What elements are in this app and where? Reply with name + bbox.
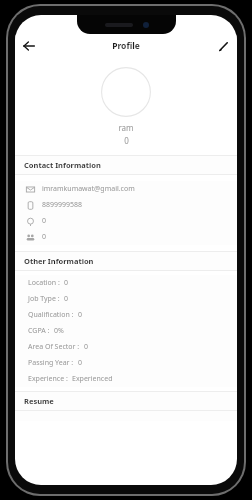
button[interactable]: Experience : (15, 371, 237, 387)
button[interactable]: Profile photo (101, 67, 151, 117)
staticText: 0 (42, 232, 47, 242)
staticText: 0 (78, 310, 83, 320)
staticText: 0 (84, 342, 89, 352)
staticText: ram (118, 122, 134, 133)
staticText: Passing Year : (28, 358, 74, 368)
staticText: 0 (78, 358, 83, 368)
button[interactable]: Resume (15, 392, 237, 410)
button[interactable]: Passing Year : (15, 355, 237, 371)
button[interactable]: Other Information (15, 252, 237, 270)
staticText: 0 (64, 278, 69, 288)
staticText: Area Of Sector : (28, 342, 80, 352)
staticText: imramkumawat@gmail.com (42, 184, 135, 194)
button[interactable]: Area Of Sector : (15, 339, 237, 355)
staticText: Location : (28, 278, 60, 288)
button[interactable]: CGPA : (15, 323, 237, 339)
staticText: Experience : (28, 374, 68, 384)
button[interactable]: Contact Information (15, 156, 237, 174)
staticText: 0 (124, 135, 129, 146)
staticText: Job Type : (28, 294, 60, 304)
staticText: Other Information (24, 256, 94, 266)
staticText: Contact Information (24, 160, 101, 170)
staticText: 0 (64, 294, 69, 304)
button[interactable]: 0 (15, 229, 237, 245)
button[interactable]: Job Type : (15, 291, 237, 307)
button[interactable]: imramkumawat@gmail.com (15, 181, 237, 197)
staticText: CGPA : (28, 326, 50, 336)
button[interactable]: Qualification : (15, 307, 237, 323)
staticText: 0% (54, 326, 64, 336)
staticText: Profile (112, 40, 140, 52)
button[interactable]: Edit profile (211, 34, 235, 58)
staticText: Qualification : (28, 310, 74, 320)
button[interactable]: Back (17, 34, 41, 58)
staticText: Resume (24, 396, 54, 406)
staticText: 0 (42, 216, 47, 226)
staticText: Experienced (72, 374, 113, 384)
button[interactable]: 0 (15, 213, 237, 229)
staticText: 8899999588 (42, 200, 83, 210)
button[interactable]: Location : (15, 275, 237, 291)
button[interactable]: 8899999588 (15, 197, 237, 213)
